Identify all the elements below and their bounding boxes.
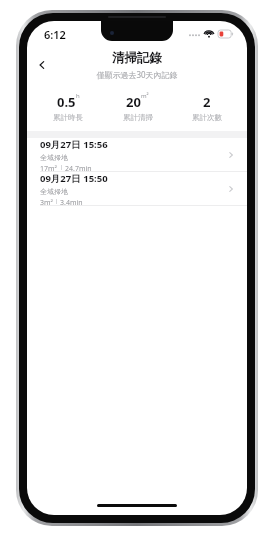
button[interactable]: 0.5: [33, 93, 103, 122]
button[interactable]: 2: [172, 93, 241, 122]
staticText: 6:12: [44, 27, 66, 42]
staticText: h: [76, 92, 80, 100]
staticText: 09月27日 15:56: [40, 138, 108, 151]
button[interactable]: Back: [27, 50, 57, 80]
staticText: 累計清掃: [123, 113, 153, 122]
button[interactable]: 09月27日 15:56: [27, 138, 247, 171]
staticText: 清掃記錄: [112, 50, 162, 66]
staticText: 3.4min: [60, 198, 83, 205]
button[interactable]: 09月27日 15:50: [27, 172, 247, 205]
staticText: m²: [141, 92, 149, 100]
staticText: 0.5: [57, 93, 76, 111]
button[interactable]: 20: [103, 93, 172, 122]
staticText: 2: [203, 93, 211, 111]
staticText: 全域掃地: [40, 153, 68, 162]
staticText: 20: [126, 93, 141, 111]
staticText: 累計次數: [192, 113, 222, 122]
staticText: 17m²: [40, 164, 58, 171]
staticText: 09月27日 15:50: [40, 172, 108, 185]
staticText: 24.7min: [65, 164, 92, 171]
staticText: 累計時長: [53, 113, 83, 122]
staticText: 3m²: [40, 198, 53, 205]
staticText: 全域掃地: [40, 187, 68, 196]
staticText: 僅顯示過去30天內記錄: [96, 69, 178, 80]
